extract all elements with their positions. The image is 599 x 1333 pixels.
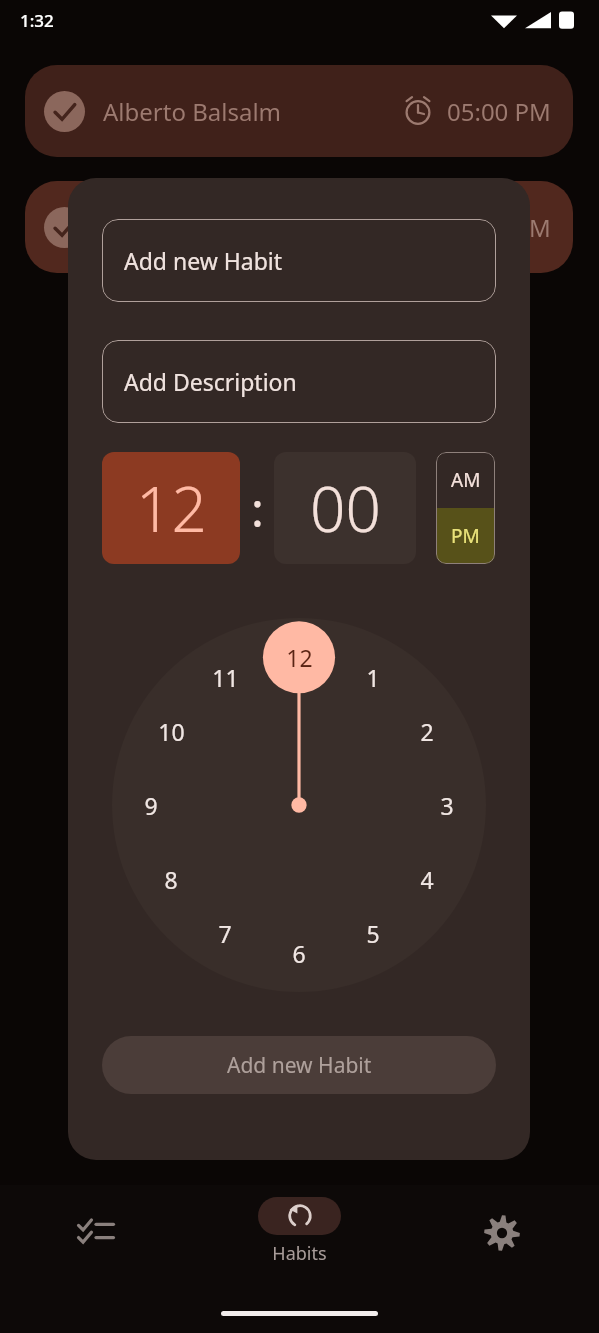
staticText: Habits xyxy=(272,1241,327,1266)
staticText: AM xyxy=(451,467,481,493)
staticText: 12 xyxy=(136,466,207,550)
staticText: Alberto Balsalm xyxy=(103,95,282,128)
staticText: 05:00 PM xyxy=(447,211,551,244)
button[interactable]: Alberto Balsalm xyxy=(25,181,573,273)
staticText: 8 xyxy=(164,864,178,895)
staticText: 05:00 PM xyxy=(447,95,551,128)
staticText: Alberto Balsalm xyxy=(103,211,282,244)
staticText: 11 xyxy=(212,662,239,693)
staticText: 10 xyxy=(158,716,185,747)
staticText: 3 xyxy=(440,790,454,821)
staticText: Add new Habit xyxy=(227,1051,372,1080)
button[interactable]: PM xyxy=(436,508,495,564)
staticText: : xyxy=(251,476,264,541)
staticText: 1 xyxy=(366,662,380,693)
staticText: 7 xyxy=(218,918,232,949)
staticText: 4 xyxy=(420,864,434,895)
staticText: 5 xyxy=(366,918,380,949)
button[interactable]: 12 xyxy=(102,452,240,564)
staticText: 2 xyxy=(420,716,434,747)
button[interactable]: Settings xyxy=(460,1191,544,1275)
staticText: 9 xyxy=(144,790,158,821)
staticText: 6 xyxy=(292,938,306,969)
button[interactable]: Clock dial xyxy=(112,618,486,992)
staticText: Add new Habit xyxy=(124,245,283,276)
button[interactable]: Habits xyxy=(232,1197,366,1266)
button[interactable]: 00 xyxy=(274,452,416,564)
button[interactable]: Alberto Balsalm xyxy=(25,65,573,157)
staticText: Add Description xyxy=(124,366,297,397)
button[interactable]: Tasks xyxy=(54,1191,138,1275)
button[interactable]: AM xyxy=(436,452,495,508)
button[interactable]: Add new Habit xyxy=(102,1036,496,1094)
staticText: 1:32 xyxy=(20,9,54,32)
staticText: 00 xyxy=(310,466,381,550)
staticText: PM xyxy=(451,523,480,549)
button[interactable]: Add Description xyxy=(102,340,496,423)
button[interactable]: Add new Habit xyxy=(102,219,496,302)
staticText: 12 xyxy=(286,642,313,673)
